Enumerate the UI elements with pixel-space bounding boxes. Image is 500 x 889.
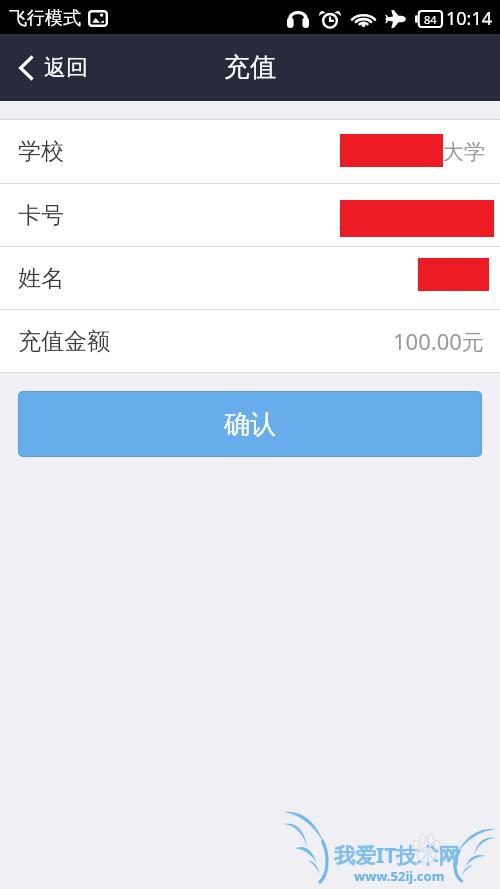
staticText: 卡号	[18, 201, 64, 230]
other: Alarm	[319, 10, 341, 28]
button[interactable]: 姓名	[0, 247, 500, 309]
staticText: 确认	[224, 408, 276, 441]
other: Back	[19, 56, 33, 80]
button[interactable]: 确认	[18, 391, 482, 457]
other: Wi-Fi	[352, 10, 375, 27]
button[interactable]: 学校	[0, 120, 500, 183]
staticText: 我爱IT技术网	[334, 841, 460, 870]
staticText: 10:14	[446, 6, 493, 31]
button[interactable]: Back	[0, 44, 104, 92]
staticText: 大学	[443, 139, 485, 165]
staticText: www.52ij.com	[354, 867, 445, 885]
other: Screenshot	[88, 10, 108, 27]
button[interactable]: 卡号	[0, 184, 500, 246]
staticText: 飞行模式	[9, 7, 81, 30]
other: Headset	[287, 10, 309, 28]
other: Airplane mode	[385, 10, 406, 28]
staticText: 充值金额	[18, 327, 110, 356]
staticText: 返回	[44, 54, 88, 82]
button[interactable]: 充值金额	[0, 310, 500, 372]
staticText: 学校	[18, 137, 64, 166]
staticText: 100.00元	[393, 326, 484, 356]
staticText: 84	[424, 12, 437, 27]
staticText: 姓名	[18, 264, 64, 293]
staticText: 充值	[224, 51, 276, 84]
